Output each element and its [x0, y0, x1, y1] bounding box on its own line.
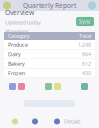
staticText: Frozen: [8, 70, 25, 77]
button[interactable]: Profile: [3, 1, 11, 9]
staticText: All regions: [5, 28, 29, 35]
staticText: Category: [8, 32, 30, 40]
staticText: Total: [79, 32, 91, 40]
staticText: Updated today: [5, 19, 41, 26]
staticText: 1,248: [78, 41, 91, 48]
button[interactable]: Sync: [76, 17, 94, 26]
staticText: 612: [82, 60, 91, 67]
staticText: Dairy: [8, 51, 21, 58]
staticText: Overview: [5, 8, 34, 17]
button[interactable]: Share: [88, 1, 96, 9]
staticText: Bakery: [8, 60, 25, 67]
staticText: Quarterly Report: [23, 1, 76, 10]
staticText: Details: [64, 118, 81, 125]
staticText: 864: [82, 51, 91, 58]
staticText: Produce: [8, 41, 28, 48]
staticText: 430: [82, 70, 91, 77]
staticText: Sync: [79, 18, 91, 25]
